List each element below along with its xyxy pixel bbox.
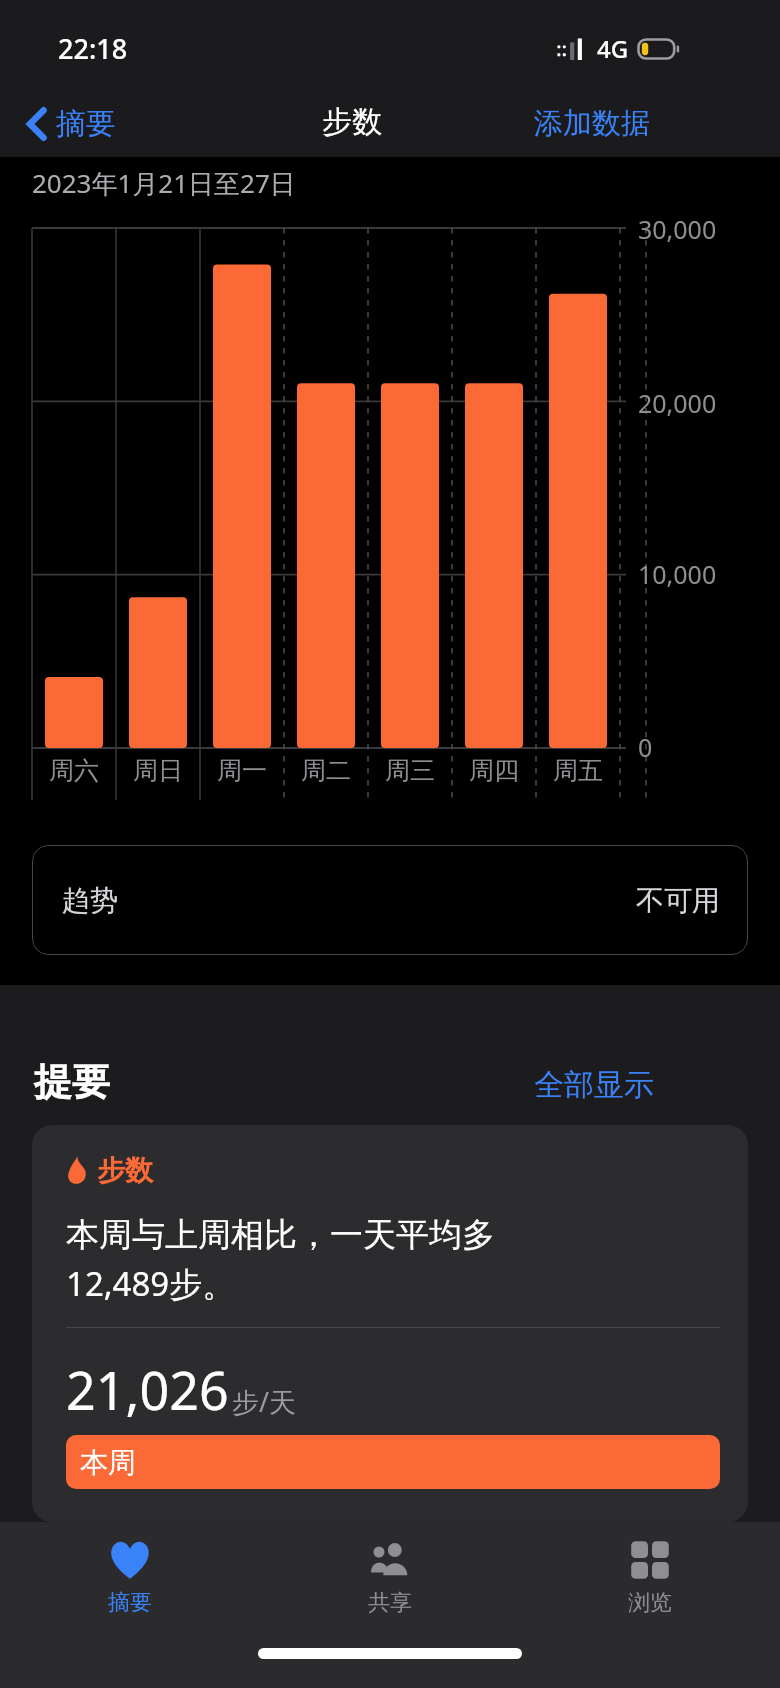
staticText: 周六 [49, 755, 99, 786]
staticText: 20,000 [638, 386, 717, 420]
button[interactable]: 全部显示 [520, 1058, 668, 1112]
button[interactable]: 趋势 [32, 845, 748, 955]
staticText: 步数 [97, 1153, 153, 1188]
staticText: 本周与上周相比，一天平均多 12,489步。 [66, 1214, 495, 1305]
staticText: 2023年1月21日至27日 [32, 165, 296, 201]
staticText: 21,026 [66, 1354, 229, 1425]
staticText: 共享 [368, 1589, 412, 1617]
staticText: 4G [597, 32, 629, 65]
staticText: 周日 [133, 755, 183, 786]
button[interactable]: 共享 [260, 1522, 520, 1652]
staticText: 30,000 [638, 212, 717, 246]
staticText: 摘要 [108, 1589, 152, 1617]
staticText: 周三 [385, 755, 435, 786]
staticText: 周二 [301, 755, 351, 786]
staticText: 周五 [553, 755, 603, 786]
staticText: 周一 [217, 755, 267, 786]
staticText: 10,000 [638, 557, 717, 591]
button[interactable]: 添加数据 [520, 95, 664, 152]
button[interactable]: 摘要 [0, 1522, 260, 1652]
staticText: 步数 [322, 103, 382, 141]
staticText: 本周 [80, 1445, 136, 1480]
button[interactable]: 步数 [32, 1125, 748, 1522]
button[interactable]: 浏览 [520, 1522, 780, 1652]
staticText: 22:18 [58, 30, 128, 67]
staticText: 摘要 [56, 105, 116, 143]
staticText: 0 [638, 730, 653, 764]
staticText: 步/天 [232, 1383, 297, 1420]
staticText: 不可用 [636, 883, 720, 918]
staticText: 趋势 [62, 883, 118, 918]
button[interactable]: 摘要 [18, 97, 124, 151]
staticText: 提要 [34, 1058, 110, 1106]
staticText: 周四 [469, 755, 519, 786]
staticText: 浏览 [628, 1589, 672, 1617]
